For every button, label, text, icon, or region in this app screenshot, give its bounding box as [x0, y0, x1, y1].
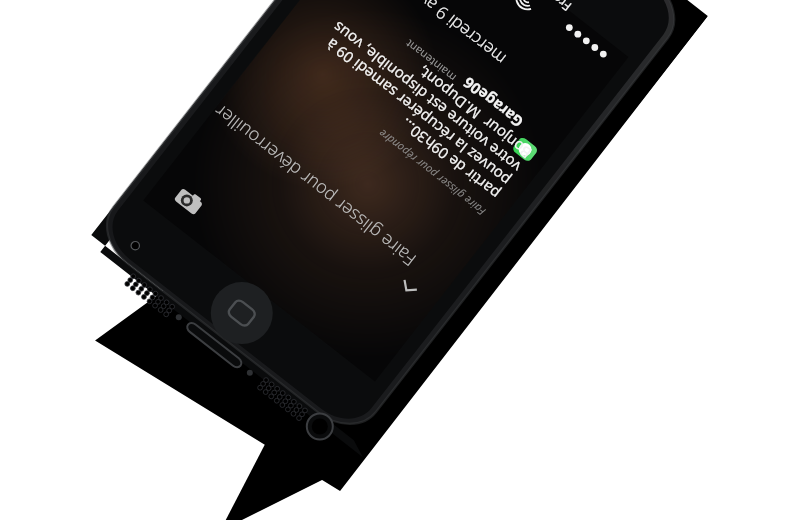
- button[interactable]: iPhone lock screen, Garage06 notificatio…: [0, 0, 800, 520]
